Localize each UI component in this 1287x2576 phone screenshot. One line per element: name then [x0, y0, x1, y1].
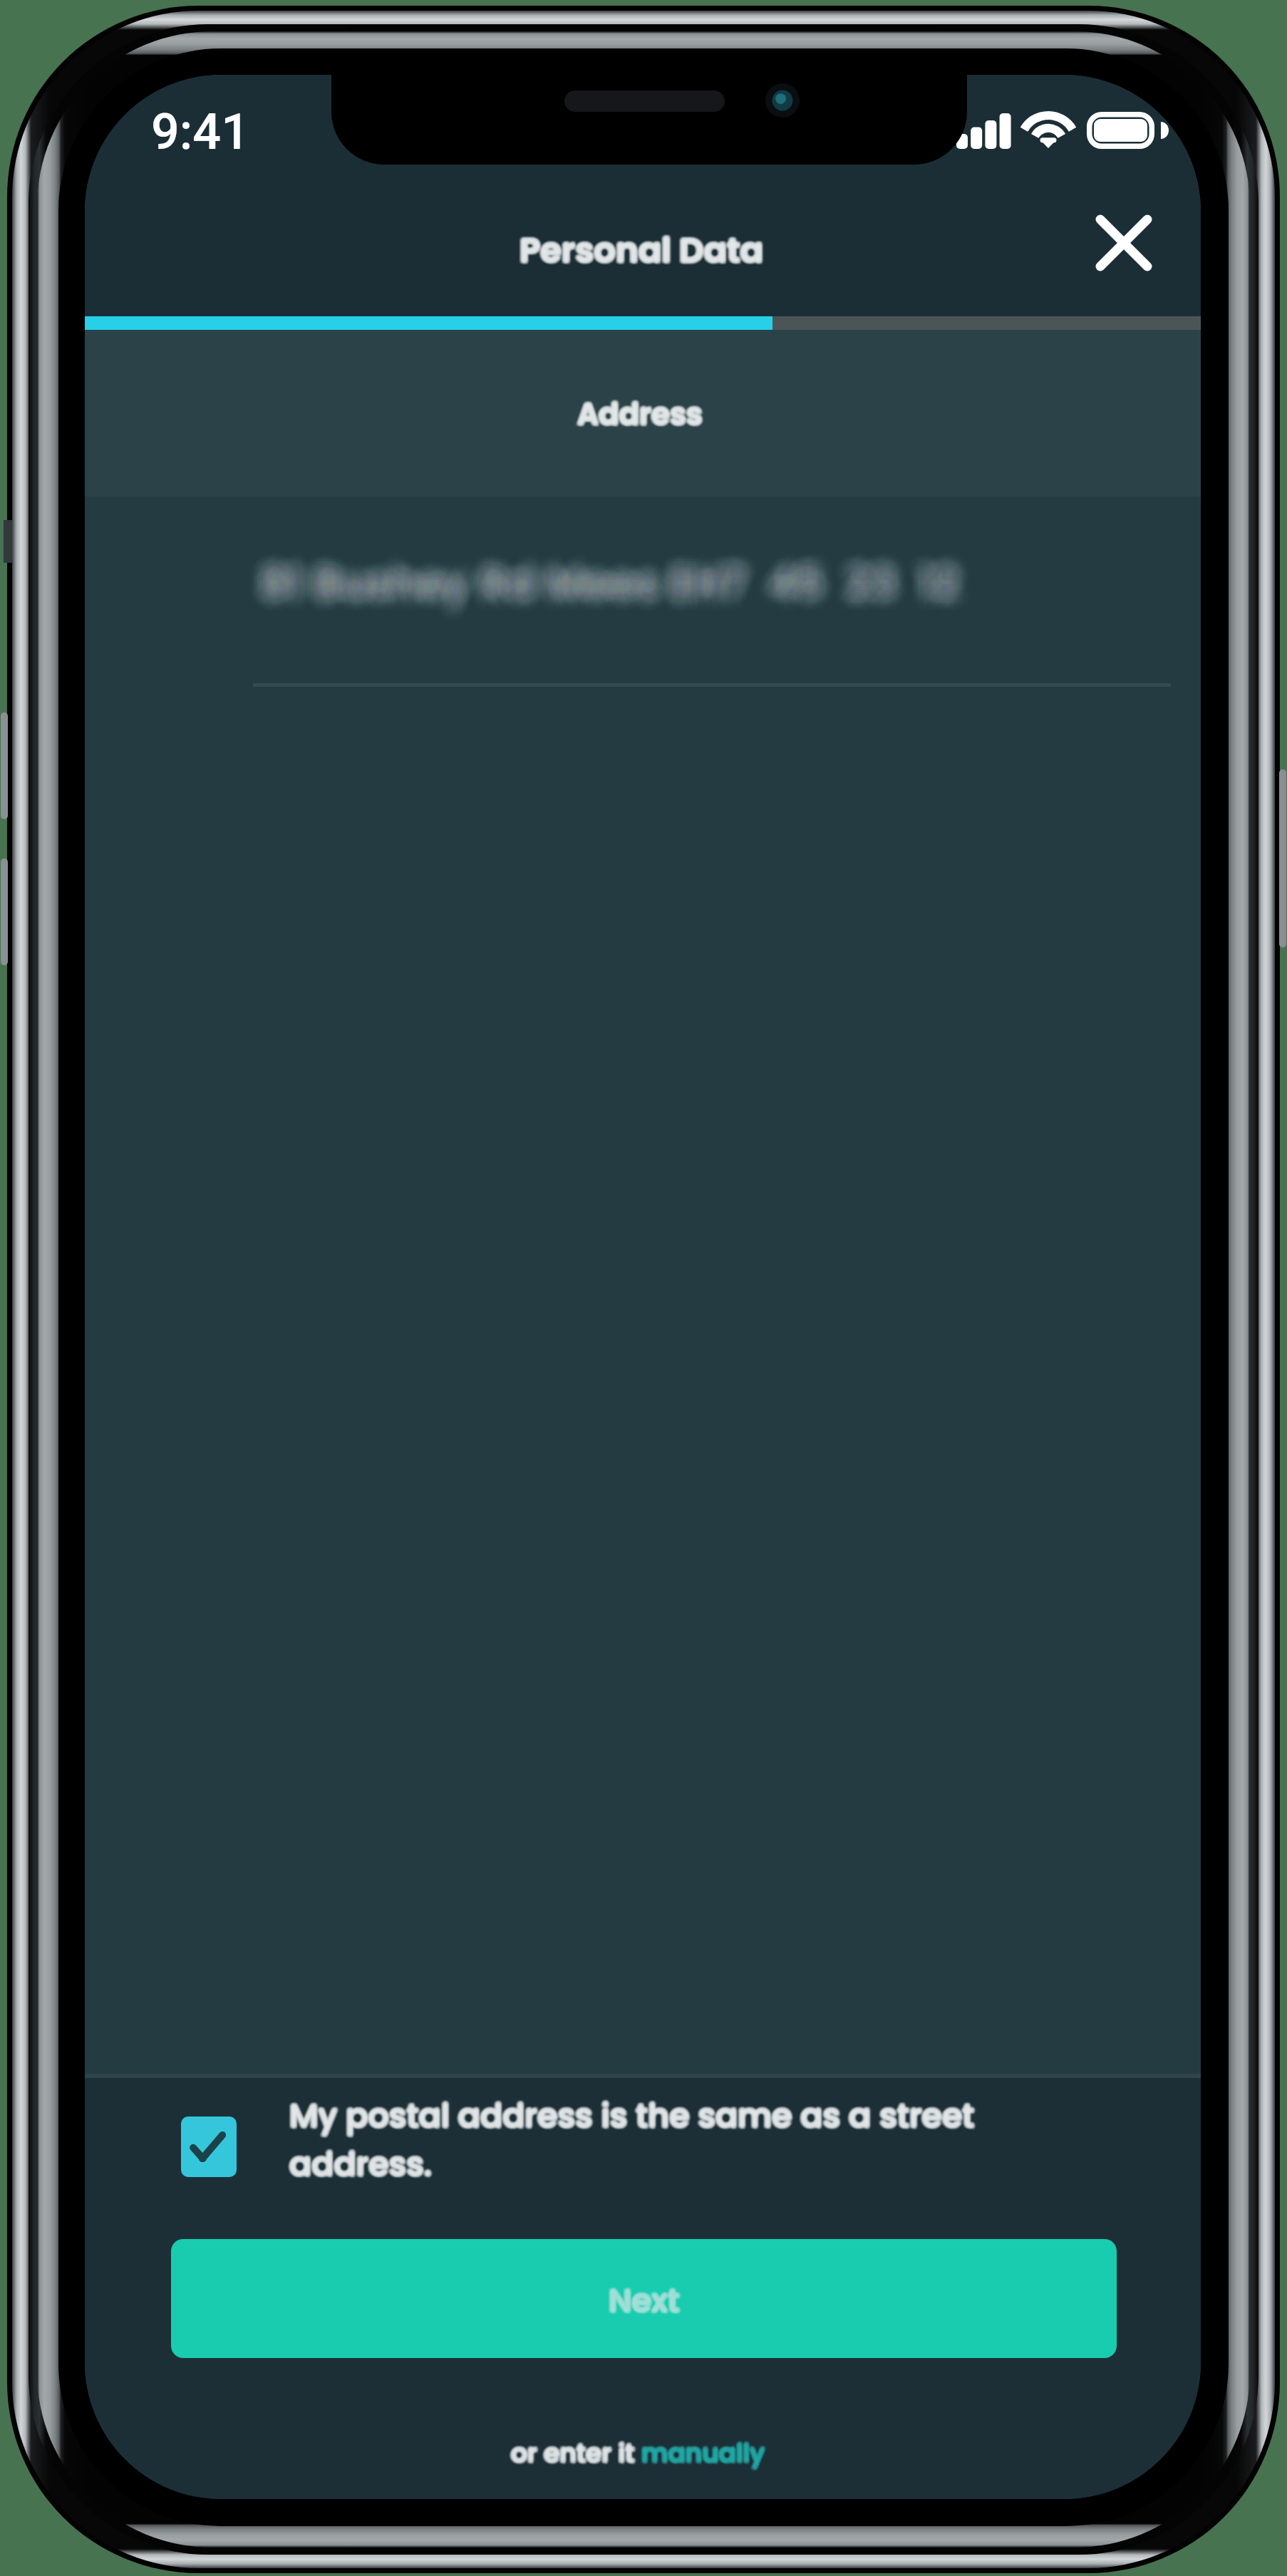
- staticText: or enter it: [510, 2434, 640, 2470]
- staticText: My postal address is the same as a stree…: [290, 2094, 1011, 2188]
- staticText: My postal address is the same as a stree…: [291, 2096, 1012, 2190]
- staticText: 81 Bushey Rd Mees EH7 45 23 12: [281, 557, 980, 614]
- staticText: Address: [576, 394, 701, 436]
- staticText: Next: [609, 2275, 680, 2320]
- staticText: My postal address is the same as a stree…: [289, 2092, 1010, 2186]
- staticText: 81 Bushey Rd Mees EH7 45 23 12: [256, 536, 954, 593]
- staticText: Personal Data: [520, 226, 764, 274]
- staticText: 81 Bushey Rd Mees EH7 45 23 12: [277, 557, 976, 614]
- staticText: or enter it: [511, 2435, 641, 2471]
- staticText: 81 Bushey Rd Mees EH7 45 23 12: [261, 552, 959, 609]
- staticText: 81 Bushey Rd Mees EH7 45 23 12: [272, 550, 970, 607]
- staticText: 81 Bushey Rd Mees EH7 45 23 12: [247, 539, 946, 596]
- staticText: 81 Bushey Rd Mees EH7 45 23 12: [267, 549, 966, 606]
- staticText: Personal Data: [518, 227, 763, 275]
- staticText: manually: [644, 2436, 767, 2471]
- button[interactable]: Next: [171, 2239, 1117, 2358]
- staticText: 81 Bushey Rd Mees EH7 45 23 12: [267, 560, 965, 617]
- staticText: manually: [643, 2437, 766, 2473]
- staticText: My postal address is the same as a stree…: [290, 2092, 1011, 2186]
- staticText: 81 Bushey Rd Mees EH7 45 23 12: [240, 556, 939, 613]
- staticText: manually: [640, 2434, 763, 2469]
- staticText: 81 Bushey Rd Mees EH7 45 23 12: [243, 550, 941, 607]
- staticText: Next: [611, 2280, 682, 2325]
- staticText: 81 Bushey Rd Mees EH7 45 23 12: [267, 573, 966, 630]
- staticText: 81 Bushey Rd Mees EH7 45 23 12: [247, 551, 946, 608]
- staticText: 81 Bushey Rd Mees EH7 45 23 12: [250, 541, 949, 598]
- staticText: 81 Bushey Rd Mees EH7 45 23 12: [262, 554, 960, 611]
- staticText: or enter it: [510, 2434, 641, 2469]
- staticText: or enter it: [513, 2434, 643, 2470]
- staticText: or enter it: [514, 2436, 644, 2471]
- staticText: manually: [639, 2434, 763, 2469]
- staticText: 81 Bushey Rd Mees EH7 45 23 12: [273, 539, 971, 596]
- staticText: manually: [641, 2434, 764, 2469]
- staticText: 81 Bushey Rd Mees EH7 45 23 12: [273, 543, 971, 600]
- staticText: 81 Bushey Rd Mees EH7 45 23 12: [272, 553, 970, 610]
- button[interactable]: My postal address is the same as a stree…: [181, 2117, 237, 2177]
- staticText: 81 Bushey Rd Mees EH7 45 23 12: [276, 560, 974, 617]
- staticText: 81 Bushey Rd Mees EH7 45 23 12: [267, 551, 966, 608]
- staticText: 81 Bushey Rd Mees EH7 45 23 12: [274, 556, 973, 613]
- staticText: Address: [579, 394, 704, 436]
- staticText: or enter it: [511, 2437, 641, 2473]
- staticText: 81 Bushey Rd Mees EH7 45 23 12: [255, 550, 953, 607]
- staticText: Address: [575, 393, 701, 435]
- staticText: 81 Bushey Rd Mees EH7 45 23 12: [263, 551, 961, 608]
- staticText: 81 Bushey Rd Mees EH7 45 23 12: [262, 537, 960, 594]
- staticText: 81 Bushey Rd Mees EH7 45 23 12: [254, 570, 952, 627]
- staticText: Address: [576, 393, 701, 435]
- staticText: Personal Data: [521, 224, 765, 272]
- staticText: 81 Bushey Rd Mees EH7 45 23 12: [249, 546, 948, 603]
- staticText: 81 Bushey Rd Mees EH7 45 23 12: [269, 536, 968, 593]
- staticText: My postal address is the same as a stree…: [289, 2091, 1010, 2185]
- staticText: Next: [607, 2278, 678, 2322]
- staticText: Address: [577, 396, 702, 438]
- staticText: My postal address is the same as a stree…: [289, 2094, 1011, 2188]
- staticText: Address: [580, 393, 705, 435]
- staticText: 81 Bushey Rd Mees EH7 45 23 12: [246, 560, 944, 617]
- staticText: 81 Bushey Rd Mees EH7 45 23 12: [266, 540, 964, 597]
- staticText: manually: [639, 2434, 762, 2469]
- staticText: Address: [577, 394, 702, 436]
- staticText: Personal Data: [521, 227, 765, 275]
- staticText: 81 Bushey Rd Mees EH7 45 23 12: [257, 539, 956, 596]
- staticText: Next: [607, 2279, 678, 2324]
- staticText: My postal address is the same as a stree…: [287, 2094, 1008, 2188]
- staticText: 81 Bushey Rd Mees EH7 45 23 12: [279, 547, 978, 604]
- staticText: manually: [642, 2438, 765, 2473]
- staticText: or enter it: [511, 2436, 641, 2472]
- staticText: 81 Bushey Rd Mees EH7 45 23 12: [257, 556, 956, 613]
- staticText: 81 Bushey Rd Mees EH7 45 23 12: [265, 550, 963, 607]
- staticText: Address: [577, 391, 703, 433]
- staticText: 81 Bushey Rd Mees EH7 45 23 12: [275, 549, 973, 606]
- staticText: or enter it: [508, 2436, 639, 2471]
- staticText: 81 Bushey Rd Mees EH7 45 23 12: [264, 571, 962, 628]
- staticText: 81 Bushey Rd Mees EH7 45 23 12: [259, 573, 957, 630]
- staticText: 81 Bushey Rd Mees EH7 45 23 12: [268, 542, 966, 599]
- staticText: 81 Bushey Rd Mees EH7 45 23 12: [250, 562, 949, 619]
- staticText: or enter it: [510, 2437, 641, 2473]
- staticText: 81 Bushey Rd Mees EH7 45 23 12: [243, 556, 941, 613]
- staticText: 81 Bushey Rd Mees EH7 45 23 12: [276, 563, 974, 620]
- staticText: 81 Bushey Rd Mees EH7 45 23 12: [258, 559, 956, 616]
- staticText: manually: [639, 2436, 763, 2472]
- staticText: 81 Bushey Rd Mees EH7 45 23 12: [257, 550, 956, 607]
- staticText: Next: [609, 2278, 680, 2323]
- button[interactable]: or enter it: [511, 2435, 765, 2471]
- staticText: 81 Bushey Rd Mees EH7 45 23 12: [247, 559, 946, 616]
- staticText: Address: [579, 392, 704, 434]
- staticText: 81 Bushey Rd Mees EH7 45 23 12: [247, 544, 946, 601]
- staticText: Next: [607, 2280, 678, 2325]
- staticText: Address: [578, 393, 703, 435]
- staticText: Next: [609, 2280, 680, 2325]
- staticText: or enter it: [512, 2436, 642, 2471]
- staticText: 81 Bushey Rd Mees EH7 45 23 12: [252, 549, 950, 606]
- staticText: 81 Bushey Rd Mees EH7 45 23 12: [271, 561, 969, 618]
- staticText: 81 Bushey Rd Mees EH7 45 23 12: [262, 539, 961, 596]
- staticText: 81 Bushey Rd Mees EH7 45 23 12: [268, 540, 966, 597]
- staticText: 81 Bushey Rd Mees EH7 45 23 12: [281, 554, 979, 611]
- staticText: manually: [641, 2437, 764, 2473]
- staticText: or enter it: [511, 2434, 641, 2470]
- button[interactable]: Close: [1081, 200, 1167, 286]
